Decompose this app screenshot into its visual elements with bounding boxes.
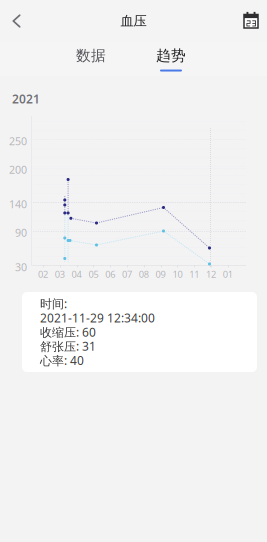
staticText: 10	[172, 268, 182, 280]
staticText: 2021-11-29 12:34:00	[40, 310, 155, 326]
staticText: 01	[223, 268, 233, 280]
staticText: 血压	[120, 13, 146, 29]
staticText: 07	[122, 268, 132, 280]
button[interactable]: 趋势	[131, 42, 211, 75]
staticText: 趋势	[156, 46, 186, 64]
staticText: 200	[9, 163, 27, 177]
staticText: 250	[9, 134, 27, 148]
staticText: 04	[72, 268, 82, 280]
button[interactable]: Calendar	[231, 0, 267, 42]
button[interactable]: Back	[0, 0, 36, 42]
staticText: 收缩压: 60	[40, 324, 96, 340]
staticText: 数据	[76, 46, 106, 64]
staticText: 时间:	[40, 296, 67, 311]
staticText: 05	[88, 268, 98, 280]
staticText: 11	[189, 268, 199, 280]
staticText: 30	[15, 260, 27, 274]
staticText: 2021	[12, 91, 40, 107]
staticText: 09	[156, 268, 166, 280]
staticText: 03	[55, 268, 65, 280]
staticText: 06	[105, 268, 115, 280]
button[interactable]: 数据	[51, 42, 131, 75]
staticText: 140	[9, 197, 27, 211]
staticText: 心率: 40	[40, 352, 84, 368]
staticText: 02	[38, 268, 48, 280]
staticText: 舒张压: 31	[40, 338, 96, 354]
staticText: 12	[206, 268, 216, 280]
staticText: 08	[139, 268, 149, 280]
staticText: 90	[15, 226, 27, 240]
